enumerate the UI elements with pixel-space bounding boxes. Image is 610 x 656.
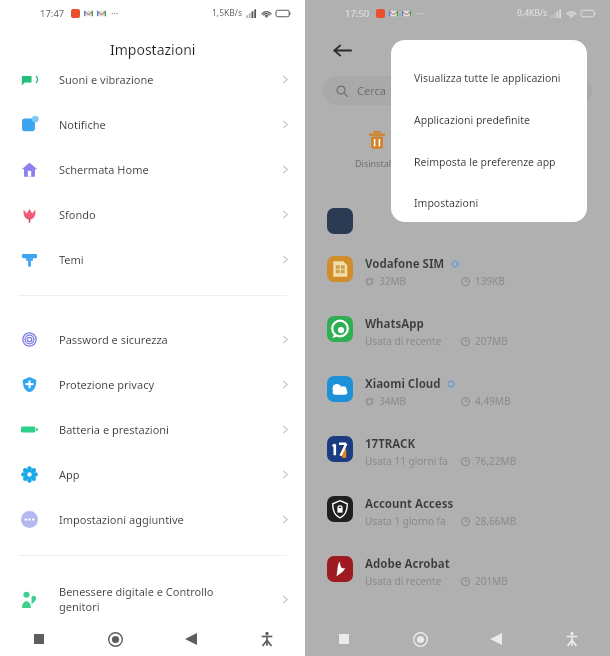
staticText: 34MB [379, 394, 407, 408]
button[interactable]: Cerca [323, 76, 592, 105]
button[interactable]: Reimposta le preferenze app [391, 141, 587, 183]
button[interactable]: Temi [0, 242, 305, 276]
button[interactable]: Back [153, 622, 229, 656]
button[interactable]: Visualizza tutte le applicazioni [391, 57, 587, 99]
button[interactable]: Notifiche [0, 107, 305, 141]
button[interactable]: Benessere digitale e Controllo genitori [0, 578, 305, 620]
staticText: Account Access [365, 496, 454, 512]
button[interactable]: Vodafone SIM [305, 256, 610, 298]
button[interactable]: Schermata Home [0, 152, 305, 186]
button[interactable]: Back [325, 33, 359, 67]
staticText: 17:47 [40, 7, 65, 20]
staticText: Usata di recente [365, 334, 442, 348]
button[interactable]: Adobe Acrobat [305, 556, 610, 598]
button[interactable]: Suoni e vibrazione [0, 62, 305, 96]
staticText: Notifiche [59, 117, 280, 132]
staticText: 0,4KB/s [517, 7, 548, 19]
staticText: Sfondo [59, 207, 280, 222]
staticText: Applicazioni predefinite [414, 113, 531, 127]
staticText: 28,66MB [475, 514, 517, 528]
button[interactable]: Disinstalla [347, 130, 407, 169]
button[interactable]: Recents [0, 622, 77, 656]
staticText: Impostazioni [110, 40, 196, 59]
button[interactable]: Accessibility [229, 622, 305, 656]
staticText: 17:50 [345, 7, 370, 20]
button[interactable]: 17TRACK [305, 436, 610, 478]
staticText: Disinstalla [355, 157, 399, 169]
button[interactable]: Sfondo [0, 197, 305, 231]
staticText: 1,5KB/s [212, 7, 243, 19]
staticText: Usata 11 giorni fa [365, 454, 448, 468]
staticText: 201MB [475, 574, 508, 588]
staticText: Usata di recente [365, 574, 442, 588]
staticText: 4,49MB [475, 394, 511, 408]
staticText: 17TRACK [365, 436, 416, 452]
button[interactable]: Accessibility [534, 622, 610, 656]
button[interactable]: App [0, 457, 305, 491]
button[interactable]: Xiaomi Cloud [305, 376, 610, 418]
button[interactable]: Recents [305, 622, 382, 656]
staticText: 76,22MB [475, 454, 517, 468]
staticText: Adobe Acrobat [365, 556, 450, 572]
staticText: Temi [59, 252, 280, 267]
button[interactable]: Back [458, 622, 534, 656]
staticText: Reimposta le preferenze app [414, 155, 556, 169]
button[interactable]: Home [382, 622, 458, 656]
staticText: Xiaomi Cloud [365, 376, 441, 392]
staticText: Protezione privacy [59, 377, 280, 392]
button[interactable]: Protezione privacy [0, 367, 305, 401]
staticText: ··· [416, 7, 424, 19]
staticText: App [59, 467, 280, 482]
staticText: Schermata Home [59, 162, 280, 177]
staticText: 139KB [475, 274, 505, 288]
staticText: Cerca [357, 83, 386, 98]
staticText: ··· [111, 7, 119, 19]
staticText: Visualizza tutte le applicazioni [414, 71, 561, 85]
staticText: Suoni e vibrazione [59, 72, 280, 87]
staticText: Usata 1 giorno fa [365, 514, 446, 528]
staticText: Benessere digitale e Controllo genitori [59, 584, 280, 614]
button[interactable]: Impostazioni [391, 183, 587, 222]
button[interactable]: Home [77, 622, 153, 656]
staticText: Vodafone SIM [365, 256, 445, 272]
staticText: Password e sicurezza [59, 332, 280, 347]
staticText: Impostazioni aggiuntive [59, 512, 280, 527]
staticText: 207MB [475, 334, 508, 348]
button[interactable]: Batteria e prestazioni [0, 412, 305, 446]
button[interactable]: Account Access [305, 496, 610, 538]
button[interactable]: WhatsApp [305, 316, 610, 358]
button[interactable]: Password e sicurezza [0, 322, 305, 356]
button[interactable]: Applicazioni predefinite [391, 99, 587, 141]
staticText: Impostazioni [414, 196, 479, 210]
staticText: 32MB [379, 274, 407, 288]
staticText: Batteria e prestazioni [59, 422, 280, 437]
button[interactable]: Impostazioni aggiuntive [0, 502, 305, 536]
staticText: WhatsApp [365, 316, 424, 332]
